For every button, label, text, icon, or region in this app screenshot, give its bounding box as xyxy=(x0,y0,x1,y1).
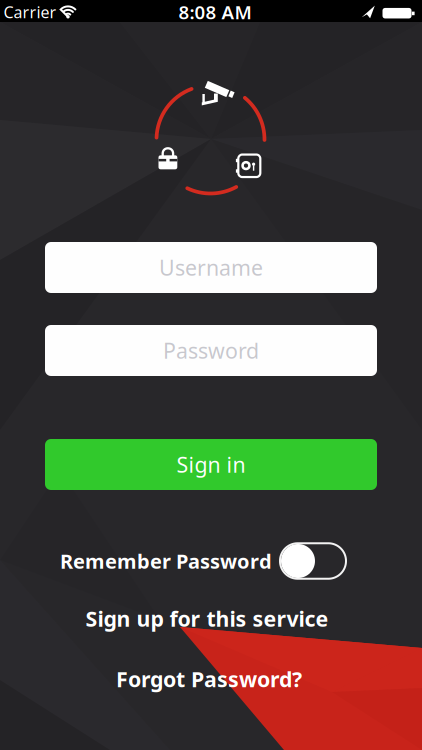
button[interactable]: Forgot Password? xyxy=(116,665,302,693)
button[interactable]: Sign up for this service xyxy=(85,604,328,633)
staticText: Remember Password xyxy=(60,548,272,574)
button[interactable]: Remember Password xyxy=(280,543,346,579)
button[interactable]: Sign in xyxy=(45,439,377,490)
button[interactable]: Username xyxy=(45,242,377,293)
staticText: Sign up for this service xyxy=(85,604,328,633)
staticText: Username xyxy=(159,253,263,282)
staticText: Carrier xyxy=(3,1,56,23)
staticText: Sign in xyxy=(176,450,245,479)
button[interactable]: Password xyxy=(45,325,377,376)
staticText: 8:08 AM xyxy=(178,0,251,24)
staticText: Password xyxy=(163,336,259,365)
staticText: Forgot Password? xyxy=(116,665,302,693)
